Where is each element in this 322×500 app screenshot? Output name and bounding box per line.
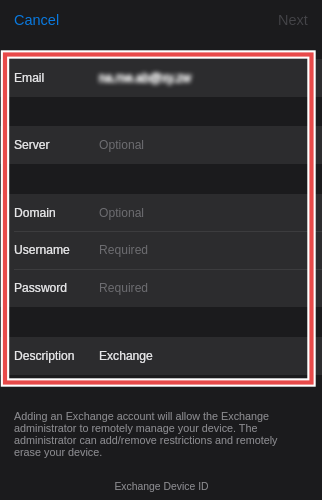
staticText: Server bbox=[14, 138, 50, 152]
button[interactable]: Cancel bbox=[14, 0, 60, 39]
staticText: Next bbox=[278, 12, 308, 28]
button[interactable]: Server bbox=[0, 126, 322, 164]
button[interactable]: Description bbox=[0, 337, 322, 375]
staticText: Exchange bbox=[99, 349, 153, 363]
button[interactable]: Email bbox=[0, 59, 322, 97]
staticText: Email bbox=[14, 71, 45, 85]
staticText: Description bbox=[14, 349, 75, 363]
staticText: Password bbox=[14, 281, 68, 295]
staticText: na.me.ab@xy.zw bbox=[99, 71, 192, 85]
staticText: Cancel bbox=[14, 12, 60, 28]
button[interactable]: Domain bbox=[0, 194, 322, 232]
button[interactable]: Exchange Device ID bbox=[114, 481, 209, 493]
button[interactable]: Password bbox=[0, 269, 322, 307]
staticText: Domain bbox=[14, 206, 56, 220]
button[interactable]: Username bbox=[0, 231, 322, 269]
button[interactable]: Next bbox=[278, 0, 308, 39]
staticText: Required bbox=[99, 281, 149, 295]
staticText: Adding an Exchange account will allow th… bbox=[14, 410, 278, 458]
staticText: Username bbox=[14, 243, 70, 257]
staticText: Optional bbox=[99, 138, 145, 152]
staticText: Required bbox=[99, 243, 149, 257]
staticText: Optional bbox=[99, 206, 145, 220]
